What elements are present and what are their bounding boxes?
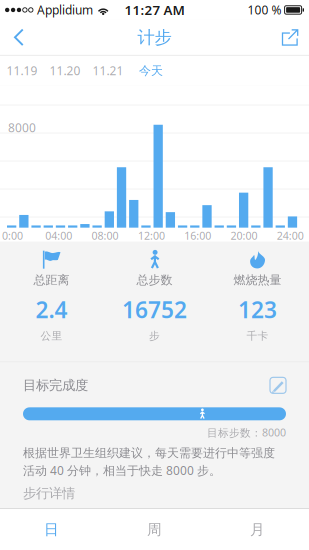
staticText: 总距离 <box>33 273 69 287</box>
staticText: 8000 <box>8 120 36 136</box>
staticText: 今天 <box>139 63 163 78</box>
button[interactable]: 月 <box>206 509 309 550</box>
button[interactable]: 日 <box>0 509 103 550</box>
staticText: 目标完成度 <box>23 377 88 394</box>
staticText: 16:00 <box>184 229 211 243</box>
staticText: 11.19 <box>6 63 37 79</box>
staticText: 计步 <box>137 27 171 48</box>
staticText: 11:27 AM <box>124 1 184 19</box>
staticText: 11.21 <box>92 63 123 79</box>
staticText: 日 <box>44 520 59 538</box>
staticText: 步 <box>149 329 160 343</box>
staticText: 目标步数：8000 <box>207 425 286 440</box>
staticText: Applidium <box>37 2 93 18</box>
staticText: 根据世界卫生组织建议，每天需要进行中等强度 <box>23 445 275 460</box>
staticText: 12:00 <box>138 229 165 243</box>
staticText: 20:00 <box>230 229 257 243</box>
staticText: 月 <box>250 520 265 538</box>
staticText: 16752 <box>122 294 187 324</box>
staticText: 100 % <box>248 2 282 18</box>
button[interactable]: 11.20 <box>43 56 86 86</box>
staticText: 24:00 <box>277 229 304 243</box>
staticText: 公里 <box>40 329 62 343</box>
staticText: 活动 40 分钟，相当于快走 8000 步。 <box>23 462 221 478</box>
button[interactable]: 11.21 <box>86 56 129 86</box>
staticText: 08:00 <box>92 229 119 243</box>
staticText: 千卡 <box>246 329 268 343</box>
staticText: 总步数 <box>136 273 172 287</box>
staticText: 燃烧热量 <box>233 273 281 287</box>
button[interactable]: Back <box>4 20 34 54</box>
button[interactable]: 步行详情 <box>0 478 309 508</box>
button[interactable]: 今天 <box>129 56 172 86</box>
button[interactable]: 11.19 <box>0 56 43 86</box>
button[interactable]: Edit goal <box>267 374 289 396</box>
button[interactable]: 周 <box>103 509 206 550</box>
staticText: 步行详情 <box>23 485 75 502</box>
staticText: 周 <box>147 520 162 538</box>
staticText: 04:00 <box>45 229 72 243</box>
staticText: 2.4 <box>35 294 67 324</box>
button[interactable]: Share <box>275 20 305 54</box>
staticText: 123 <box>238 294 277 324</box>
staticText: 11.20 <box>49 63 80 79</box>
staticText: 0:00 <box>2 229 23 243</box>
